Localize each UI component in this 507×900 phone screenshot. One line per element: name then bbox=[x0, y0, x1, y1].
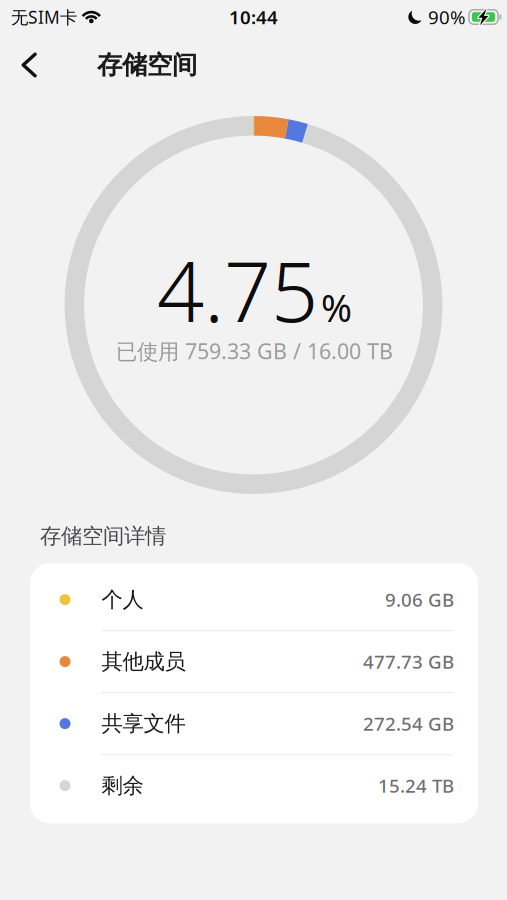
staticText: 9.06 GB bbox=[385, 587, 454, 612]
staticText: 其他成员 bbox=[101, 648, 185, 675]
staticText: 剩余 bbox=[101, 772, 143, 799]
staticText: 存储空间 bbox=[97, 49, 197, 80]
staticText: 10:44 bbox=[229, 5, 278, 29]
staticText: 无SIM卡 bbox=[11, 5, 77, 28]
button[interactable]: 个人 bbox=[30, 569, 478, 631]
button[interactable]: 其他成员 bbox=[30, 631, 478, 693]
staticText: 共享文件 bbox=[101, 710, 185, 737]
staticText: 4.75 bbox=[157, 235, 318, 345]
button[interactable]: 共享文件 bbox=[30, 693, 478, 755]
staticText: 90% bbox=[428, 5, 466, 29]
staticText: 477.73 GB bbox=[363, 649, 454, 674]
staticText: 已使用 759.33 GB / 16.00 TB bbox=[116, 337, 393, 365]
button[interactable]: Back bbox=[7, 34, 51, 96]
staticText: % bbox=[321, 283, 352, 332]
staticText: 个人 bbox=[101, 586, 143, 613]
staticText: 15.24 TB bbox=[378, 773, 454, 798]
staticText: 存储空间详情 bbox=[40, 523, 166, 549]
staticText: 272.54 GB bbox=[363, 711, 454, 736]
button[interactable]: 剩余 bbox=[30, 755, 478, 817]
